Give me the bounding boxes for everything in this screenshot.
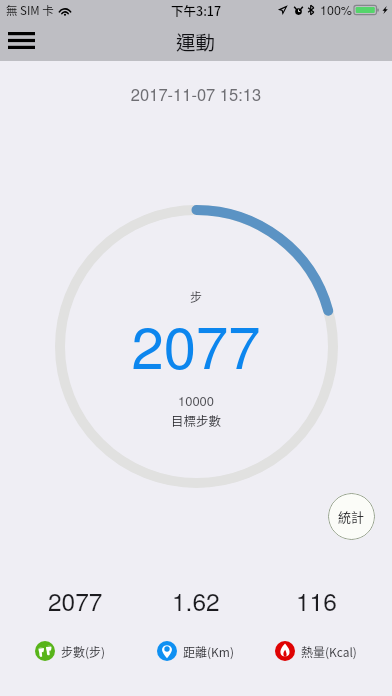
staticText: 無 SIM 卡 bbox=[6, 2, 54, 19]
staticText: 統計 bbox=[338, 507, 365, 526]
staticText: 2077 bbox=[48, 583, 103, 618]
staticText: 熱量(Kcal) bbox=[301, 643, 357, 660]
staticText: 運動 bbox=[176, 27, 216, 55]
staticText: 2017-11-07 15:13 bbox=[0, 82, 392, 106]
staticText: 步 bbox=[0, 288, 392, 305]
button[interactable]: 統計 bbox=[328, 493, 375, 540]
staticText: 目標步數 bbox=[0, 411, 392, 429]
staticText: 116 bbox=[296, 583, 337, 618]
staticText: 1.62 bbox=[172, 583, 220, 618]
staticText: 2077 bbox=[0, 302, 392, 385]
staticText: 下午3:17 bbox=[171, 1, 222, 19]
staticText: 步數(步) bbox=[61, 643, 106, 660]
staticText: 10000 bbox=[0, 391, 392, 410]
staticText: 距離(Km) bbox=[183, 643, 234, 660]
button[interactable]: Menu bbox=[7, 20, 35, 61]
staticText: 100% bbox=[320, 1, 352, 19]
